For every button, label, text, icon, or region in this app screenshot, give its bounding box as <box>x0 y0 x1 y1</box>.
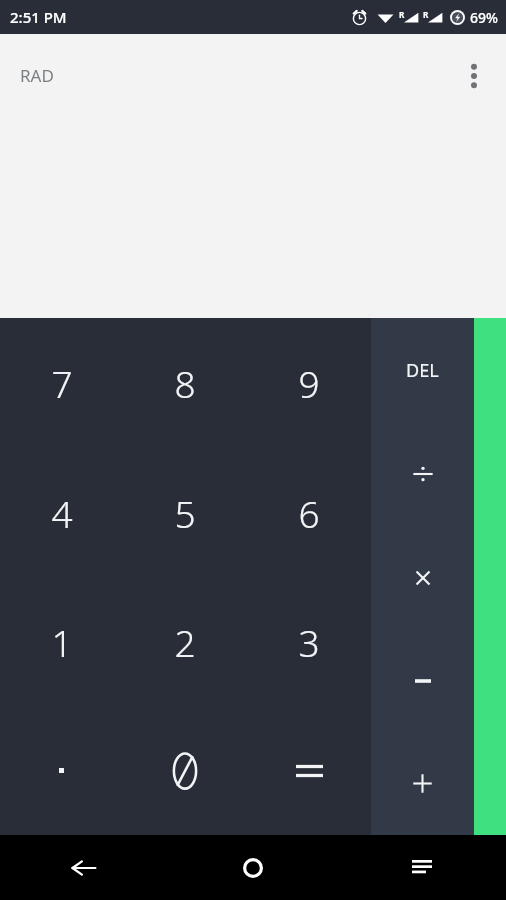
button[interactable]: More options <box>452 54 496 98</box>
button[interactable]: 5 <box>123 448 247 577</box>
staticText: 2 <box>174 617 196 667</box>
button[interactable]: Minus <box>371 629 474 732</box>
staticText: 5 <box>174 488 196 538</box>
staticText: R <box>423 9 429 20</box>
button[interactable]: 2 <box>123 577 247 706</box>
staticText: 2:51 PM <box>10 7 67 27</box>
button[interactable]: Plus <box>371 732 474 835</box>
button[interactable]: 8 <box>123 318 247 448</box>
button[interactable]: Back <box>0 835 168 900</box>
button[interactable] <box>0 706 123 835</box>
button[interactable]: 6 <box>247 448 371 577</box>
button[interactable] <box>123 706 247 835</box>
button[interactable]: Recent apps <box>337 835 506 900</box>
staticText: 6 <box>298 488 320 538</box>
button[interactable]: RAD <box>18 62 56 89</box>
staticText: R <box>399 9 405 20</box>
staticText: 3 <box>298 617 320 667</box>
button[interactable]: DEL <box>371 318 474 422</box>
staticText: 69% <box>470 8 498 27</box>
staticText: 9 <box>298 358 320 408</box>
button[interactable]: 7 <box>0 318 123 448</box>
button[interactable]: Divide <box>371 422 474 526</box>
button[interactable]: 4 <box>0 448 123 577</box>
staticText: 8 <box>174 358 196 408</box>
staticText: 4 <box>51 488 73 538</box>
button[interactable]: Multiply <box>371 526 474 629</box>
button[interactable]: Home <box>168 835 337 900</box>
button[interactable]: 9 <box>247 318 371 448</box>
staticText: 7 <box>51 358 73 408</box>
button[interactable]: 3 <box>247 577 371 706</box>
staticText: DEL <box>406 358 439 383</box>
button[interactable] <box>247 706 371 835</box>
staticText: 1 <box>51 617 73 667</box>
button[interactable]: 1 <box>0 577 123 706</box>
